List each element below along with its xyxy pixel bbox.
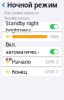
staticText: Вкл. автоматически — [5, 41, 39, 62]
button[interactable]: Вкл. автоматически — [2, 47, 61, 56]
staticText: 07:00 — [45, 69, 54, 74]
staticText: 22:00 — [45, 59, 54, 64]
button[interactable]: Конец — [2, 67, 61, 76]
staticText: Конец — [12, 68, 27, 75]
staticText: 100% — [49, 34, 58, 39]
staticText: Ночной режим — [7, 1, 57, 9]
button[interactable]: Standby night brightness — [2, 22, 61, 31]
button[interactable]: Начало — [2, 57, 61, 66]
staticText: Настройка яркости Standby ночью. — [4, 10, 38, 21]
button[interactable]: Back — [0, 0, 5, 10]
staticText: Начало — [12, 58, 31, 65]
staticText: Standby night brightness — [5, 19, 38, 34]
